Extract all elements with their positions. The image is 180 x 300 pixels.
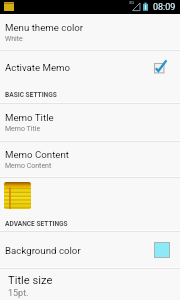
staticText: BASIC SETTINGS [5,91,57,99]
button[interactable] [0,178,180,211]
staticText: White [5,35,23,43]
other: Activate Memo toggle [154,60,170,75]
staticText: 3G [129,0,134,5]
staticText: Memo Content [5,162,52,170]
staticText: Menu theme color [5,22,84,33]
staticText: Memo Content [5,149,70,160]
staticText: ADVANCE SETTINGS [5,220,68,228]
button[interactable]: Memo Content [0,142,180,176]
staticText: Title size [8,274,53,287]
button[interactable]: Background color [0,232,180,267]
button[interactable]: Title size [0,269,180,300]
button[interactable]: Menu theme color [0,14,180,49]
button[interactable]: Memo Title [0,104,180,140]
staticText: Background color [5,245,81,256]
button[interactable]: Activate Memo [0,51,180,83]
staticText: 15pt. [8,288,29,299]
staticText: 08:09 [153,2,176,13]
staticText: Activate Memo [5,62,71,73]
staticText: Memo Title [5,125,41,133]
staticText: Memo Title [5,112,54,123]
